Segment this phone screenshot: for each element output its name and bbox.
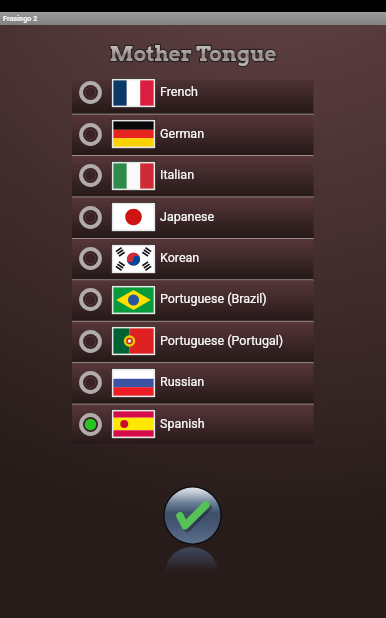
staticText: Italian — [160, 167, 195, 182]
button[interactable] — [72, 239, 314, 280]
staticText: Japanese — [160, 209, 215, 224]
staticText: Spanish — [160, 416, 205, 431]
button[interactable] — [72, 280, 314, 321]
staticText: Frasingo 2 — [3, 14, 38, 23]
button[interactable]: Confirm selection — [163, 486, 222, 545]
staticText: Mother Tongue — [109, 41, 277, 66]
button[interactable] — [72, 404, 314, 444]
staticText: Korean — [160, 250, 200, 265]
button[interactable] — [72, 197, 314, 238]
staticText: Portuguese (Portugal) — [160, 333, 284, 348]
button[interactable] — [72, 114, 314, 155]
staticText: German — [160, 126, 205, 141]
staticText: Portuguese (Brazil) — [160, 291, 267, 306]
button[interactable] — [72, 80, 314, 115]
staticText: French — [160, 84, 198, 99]
button[interactable] — [72, 322, 314, 363]
staticText: Russian — [160, 374, 205, 389]
button[interactable] — [72, 363, 314, 404]
button[interactable] — [72, 156, 314, 197]
staticText: Mother Tongue — [109, 41, 277, 66]
